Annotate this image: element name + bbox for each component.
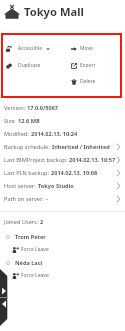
staticText: 2 [40,218,44,226]
staticText: Joined Users: [4,218,40,226]
staticText: Version: [4,104,27,112]
button[interactable]: Path on server: [4,192,120,205]
staticText: 2014.02.13. 10:08 [51,169,98,177]
staticText: Trom Peter [15,233,46,241]
button[interactable]: Host server: [4,179,120,192]
button[interactable]: Size: [4,114,120,127]
button[interactable]: Export [69,59,121,72]
staticText: Last PLN backup: [4,169,51,177]
staticText: 12.6 MB [18,117,40,125]
staticText: 17.0.0/5067 [27,104,59,112]
button[interactable]: Version: [4,101,120,114]
staticText: Inherited / Inherited [52,143,110,151]
button[interactable]: Last BIMProject backup: [4,153,120,166]
staticText: Tokyo Studio [38,182,74,190]
staticText: - [46,195,48,203]
staticText: 2014.02.13. 10:24 [31,130,78,138]
button[interactable]: Expand panel [0,269,8,326]
staticText: Export [80,62,96,69]
staticText: Force Leave [21,246,49,253]
staticText: Size: [4,117,18,125]
staticText: Force Leave [21,272,49,279]
staticText: 2014.02.13. 10:57 [69,156,116,164]
button[interactable]: Force Leave [12,269,125,282]
staticText: Last BIMProject backup: [4,156,69,164]
staticText: Tokyo Mall [24,4,84,19]
staticText: Delete [80,78,96,85]
button[interactable]: Trom Peter [6,230,125,243]
staticText: Duplicate [18,62,41,69]
button[interactable]: Modified: [4,127,120,140]
staticText: Path on server: [4,195,46,203]
button[interactable]: Move [69,42,121,55]
staticText: Modified: [4,130,31,138]
button[interactable]: Last PLN backup: [4,166,120,179]
staticText: Move [80,45,93,52]
button[interactable]: Néda Laci [6,256,125,269]
staticText: Néda Laci [15,259,43,267]
staticText: Accessible [18,45,43,52]
staticText: Host server: [4,182,38,190]
button[interactable]: Force Leave [12,243,125,256]
button[interactable]: Delete [69,75,121,88]
staticText: Backup schedule: [4,143,52,151]
button[interactable]: Duplicate [4,59,56,72]
button[interactable]: Backup schedule: [4,140,120,153]
button[interactable]: Accessible [4,42,56,55]
